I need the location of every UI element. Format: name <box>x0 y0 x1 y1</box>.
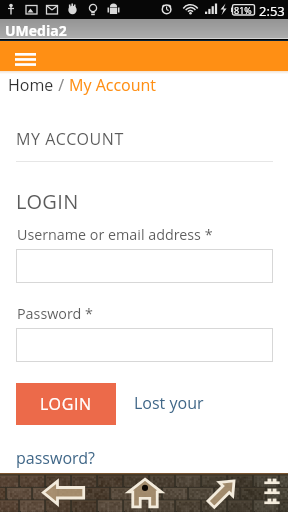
button[interactable]: LOGIN <box>16 383 116 425</box>
button[interactable]: Recent apps <box>264 478 280 508</box>
button[interactable]: Back <box>42 480 85 505</box>
button[interactable]: password? <box>16 447 95 469</box>
staticText: LOGIN <box>16 188 79 215</box>
button[interactable]: Menu <box>7 42 39 70</box>
staticText: 81% <box>234 4 252 16</box>
button[interactable]: Forward <box>207 477 238 508</box>
button[interactable]: Lost your <box>134 392 204 414</box>
staticText: Password * <box>17 304 93 323</box>
button[interactable]: Home <box>8 74 54 96</box>
staticText: LOGIN <box>40 393 92 415</box>
button[interactable]: My Account <box>69 74 156 96</box>
staticText: / <box>54 74 69 96</box>
staticText: Username or email address * <box>17 225 213 244</box>
staticText: 2:53 <box>259 2 285 20</box>
staticText: UMedia2 <box>5 21 67 40</box>
button[interactable]: Home <box>128 478 162 508</box>
staticText: MY ACCOUNT <box>16 128 124 150</box>
